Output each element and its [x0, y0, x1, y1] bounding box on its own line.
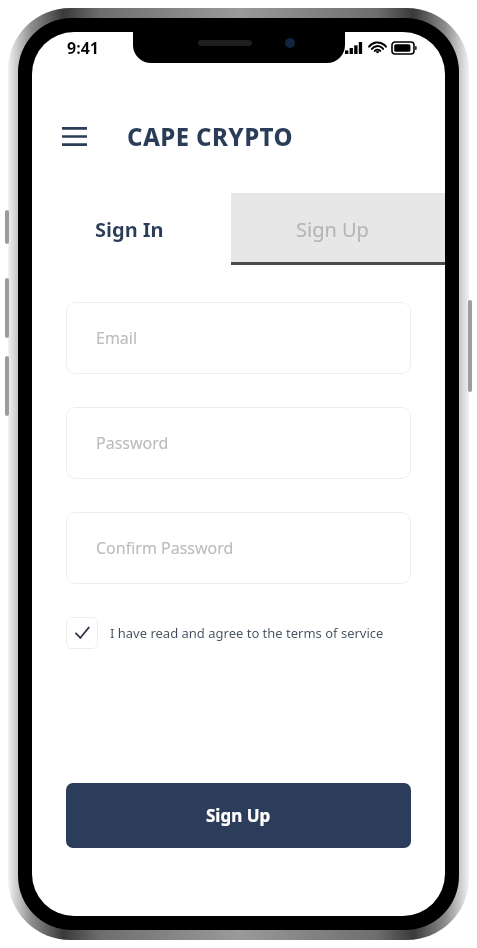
button[interactable]: I have read and agree to the terms of se… — [66, 617, 411, 649]
staticText: 9:41 — [67, 37, 99, 59]
button[interactable]: Confirm Password — [66, 512, 411, 584]
staticText: Sign In — [95, 216, 164, 243]
button[interactable]: Sign In — [32, 193, 231, 265]
button[interactable]: Open navigation menu — [54, 116, 94, 156]
button[interactable]: Password — [66, 407, 411, 479]
staticText: I have read and agree to the terms of se… — [110, 624, 384, 642]
button[interactable]: Sign Up — [66, 783, 411, 848]
staticText: Sign Up — [206, 804, 271, 827]
button[interactable]: Sign Up — [231, 193, 445, 265]
staticText: Password — [96, 432, 169, 454]
staticText: Email — [96, 327, 138, 349]
button[interactable]: Email — [66, 302, 411, 374]
staticText: CAPE CRYPTO — [127, 120, 293, 153]
staticText: Sign Up — [296, 216, 369, 243]
staticText: Confirm Password — [96, 537, 234, 559]
